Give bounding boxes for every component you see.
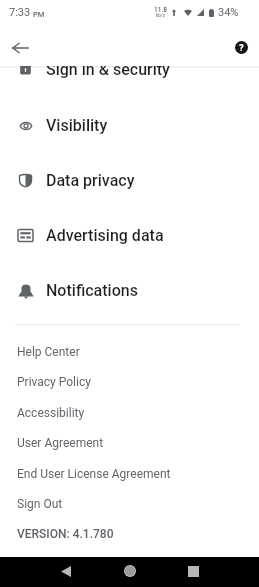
staticText: Privacy Policy (17, 375, 91, 389)
button[interactable]: Sign in & security (0, 42, 259, 97)
button[interactable]: Visibility (0, 98, 259, 153)
staticText: ? (239, 42, 244, 53)
button[interactable]: Back (49, 556, 83, 586)
button[interactable]: Data privacy (0, 153, 259, 208)
staticText: Notifications (46, 281, 138, 300)
staticText: kb/s (156, 13, 165, 18)
button[interactable]: Recent apps (176, 556, 210, 586)
button[interactable]: Advertising data (0, 208, 259, 263)
button[interactable]: Navigate up (5, 32, 36, 63)
staticText: Advertising data (46, 226, 164, 245)
button[interactable]: Sign Out (0, 489, 259, 519)
button[interactable]: Privacy Policy (0, 367, 259, 397)
staticText: 34% (218, 6, 239, 19)
button[interactable]: Accessibility (0, 398, 259, 428)
staticText: Sign in & security (46, 60, 170, 79)
button[interactable]: Help Center (0, 337, 259, 367)
button[interactable]: User Agreement (0, 428, 259, 458)
button[interactable]: VERSION: 4.1.780 (0, 519, 259, 549)
staticText: User Agreement (17, 436, 104, 450)
staticText: PM (33, 10, 45, 19)
button[interactable]: Help (228, 34, 254, 60)
staticText: Sign Out (17, 497, 63, 511)
staticText: 11.8 (154, 6, 167, 14)
button[interactable]: Home (113, 556, 147, 586)
staticText: Help Center (17, 345, 80, 359)
staticText: 7:33 (9, 6, 31, 19)
staticText: Accessibility (17, 406, 85, 420)
button[interactable]: End User License Agreement (0, 459, 259, 489)
staticText: Visibility (46, 116, 108, 135)
staticText: Data privacy (46, 171, 135, 190)
staticText: VERSION: 4.1.780 (17, 527, 114, 541)
button[interactable]: Notifications (0, 263, 259, 318)
staticText: End User License Agreement (17, 467, 171, 481)
